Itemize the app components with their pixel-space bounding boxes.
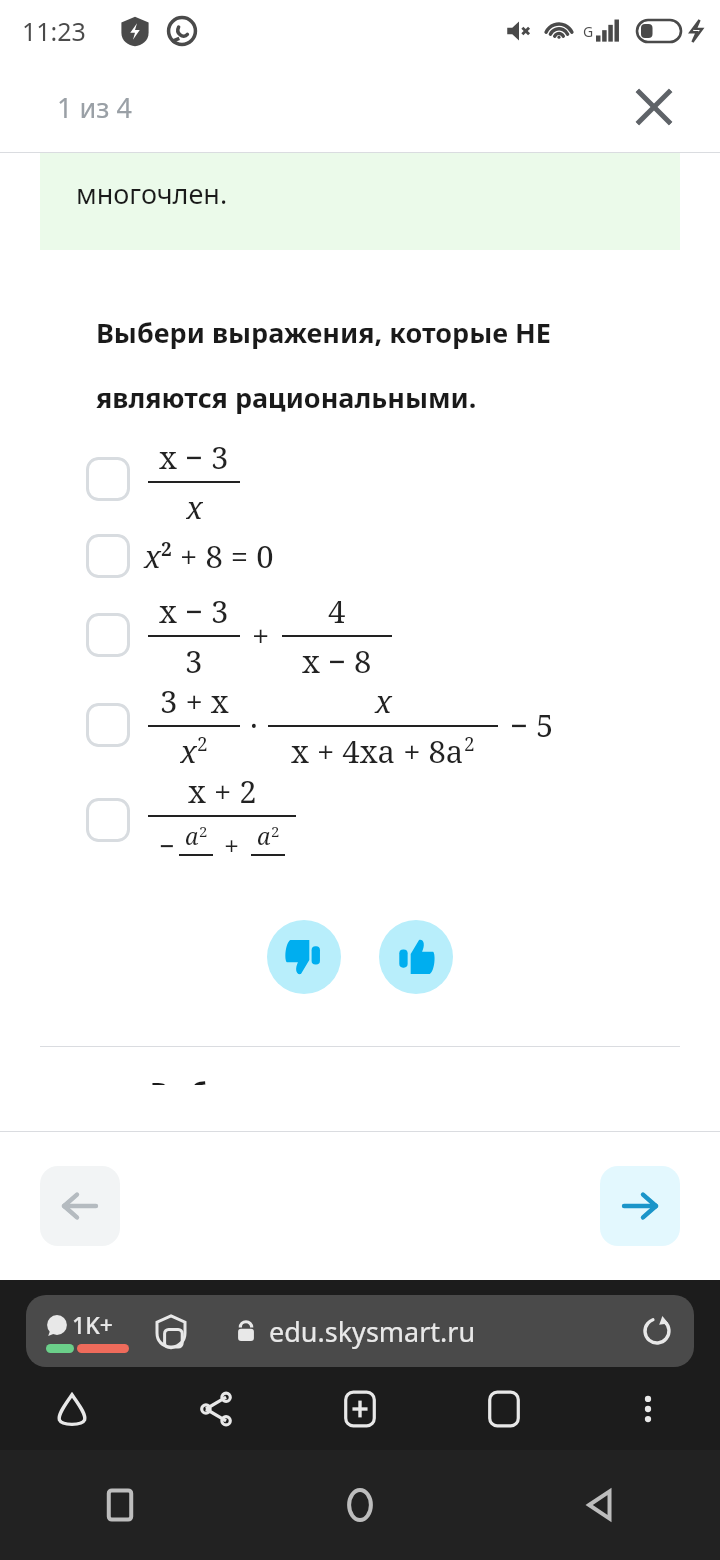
staticText: Выбери выражения, которые	[150, 1073, 563, 1085]
button[interactable]: Закрыть	[630, 83, 678, 131]
staticText: 3	[185, 640, 203, 680]
staticText: x	[180, 730, 197, 770]
staticText: x	[144, 535, 161, 577]
button[interactable]: Вариант ответа	[86, 703, 130, 747]
staticText: +	[244, 614, 278, 656]
staticText: Выбери выражения, которые НЕ	[96, 314, 720, 351]
button[interactable]: Home	[240, 1450, 480, 1560]
staticText: 2	[197, 731, 208, 757]
staticText: многочлен.	[76, 175, 228, 212]
staticText: 3 + x	[160, 680, 229, 722]
staticText: 4	[328, 590, 346, 632]
staticText: ·	[242, 704, 266, 746]
button[interactable]: 1K+	[26, 1295, 694, 1367]
staticText: edu.skysmart.ru	[269, 1313, 476, 1350]
button[interactable]: Вариант ответа	[86, 534, 130, 578]
staticText: 11:23	[22, 14, 86, 48]
button[interactable]: Вариант ответа	[86, 457, 130, 501]
staticText: 2	[199, 821, 208, 841]
button[interactable]: Не нравится	[267, 920, 341, 994]
staticText: 2	[464, 731, 475, 757]
button[interactable]: Вариант ответа	[0, 436, 720, 522]
button[interactable]: tabs	[432, 1367, 576, 1450]
button[interactable]: Вариант ответа	[0, 590, 720, 680]
staticText: +	[217, 827, 247, 864]
staticText: x + 4xa + 8a	[291, 730, 464, 770]
button[interactable]: Назад	[40, 1166, 120, 1246]
staticText: a	[185, 820, 199, 851]
button[interactable]: Back	[480, 1450, 720, 1560]
button[interactable]: more	[576, 1367, 720, 1450]
staticText: 1 из 4	[57, 89, 132, 126]
other: Обновить	[642, 1316, 672, 1346]
button[interactable]: Вперёд	[600, 1166, 680, 1246]
button[interactable]: Recents	[0, 1450, 240, 1560]
button[interactable]: Вариант ответа	[86, 613, 130, 657]
staticText: 2	[271, 821, 280, 841]
staticText: x + 2	[188, 770, 257, 812]
staticText: x	[186, 486, 203, 522]
staticText: −	[159, 827, 175, 864]
button[interactable]: Вариант ответа	[0, 680, 720, 770]
button[interactable]: plus	[288, 1367, 432, 1450]
button[interactable]: Вариант ответа	[86, 798, 130, 842]
staticText: x − 3	[159, 590, 229, 632]
staticText: a	[257, 820, 271, 851]
staticText: − 5	[502, 704, 554, 746]
button[interactable]: Вариант ответа	[0, 770, 720, 870]
staticText: 1K+	[72, 1309, 113, 1340]
button[interactable]: home	[0, 1367, 144, 1450]
staticText: G	[583, 22, 594, 41]
staticText: x − 3	[159, 436, 229, 478]
staticText: + 8 = 0	[172, 535, 274, 577]
button[interactable]: Нравится	[379, 920, 453, 994]
staticText: являются рациональными.	[96, 379, 720, 416]
button[interactable]: Вариант ответа	[0, 522, 720, 590]
button[interactable]: share	[144, 1367, 288, 1450]
staticText: x − 8	[302, 640, 372, 680]
staticText: x	[375, 680, 392, 722]
staticText: 2	[161, 536, 172, 562]
